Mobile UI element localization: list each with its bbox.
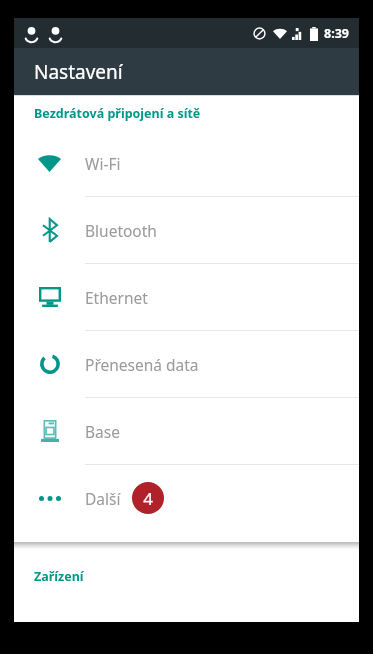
staticText: Wi-Fi [85,153,121,174]
button[interactable]: More [14,465,359,531]
staticText: Zařízení [34,568,84,585]
staticText: 4 [143,487,153,510]
staticText: Přenesená data [85,354,199,375]
button[interactable]: Ethernet [14,264,359,331]
staticText: Base [85,421,120,442]
other: Ethernet [39,287,61,307]
staticText: Bluetooth [85,220,157,241]
button[interactable]: Bluetooth [14,197,359,264]
button[interactable]: Wi-Fi [14,130,359,197]
staticText: 8:39 [324,25,349,42]
staticText: Bezdrátová připojení a sítě [34,105,201,122]
staticText: Ethernet [85,287,148,308]
other: Base [41,420,59,442]
other: Bluetooth [43,219,57,242]
other: More [39,496,61,501]
button[interactable]: Data usage [14,331,359,398]
staticText: Další [85,488,121,509]
staticText: Nastavení [34,59,123,85]
other: Data usage [40,354,60,374]
button[interactable]: Base [14,398,359,465]
other: Wi-Fi [38,155,61,172]
